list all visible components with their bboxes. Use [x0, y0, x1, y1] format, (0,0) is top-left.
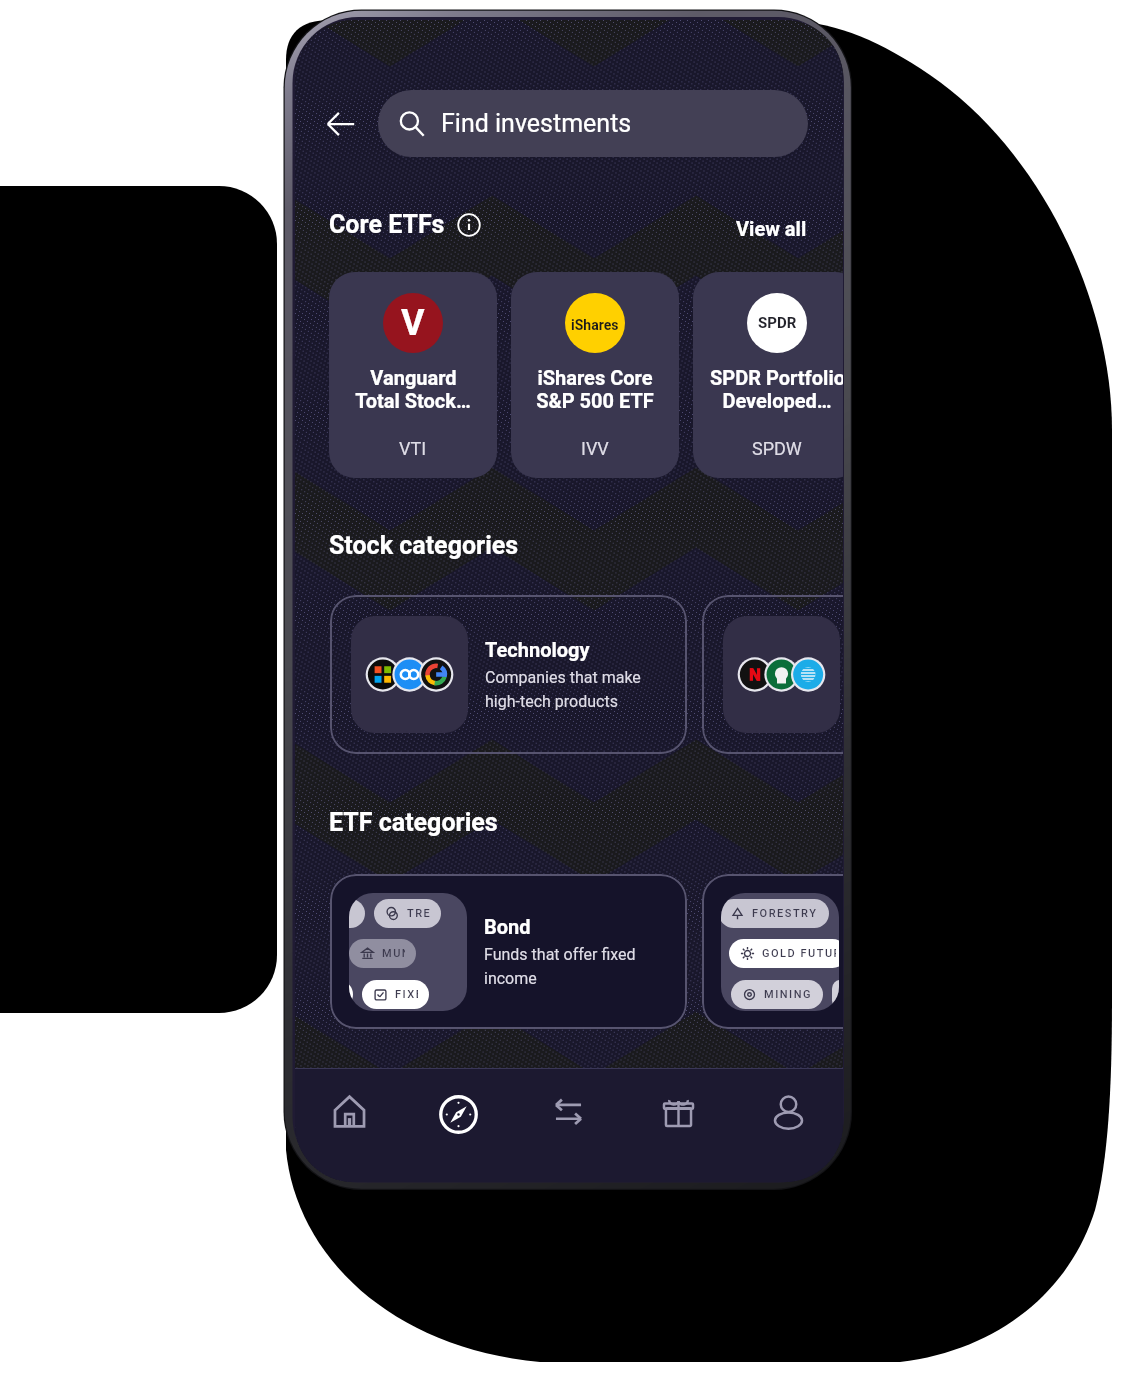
staticText: S&P 500 ETF	[536, 389, 654, 412]
staticText: MINING	[764, 988, 812, 1001]
staticText: Bond	[484, 915, 531, 938]
staticText: Core ETFs	[329, 210, 445, 239]
staticText: View all	[736, 217, 807, 240]
button[interactable]: View all	[732, 213, 811, 244]
button[interactable]: Back	[317, 100, 365, 148]
button[interactable]: Consumer	[702, 595, 843, 754]
button[interactable]: iShares	[511, 272, 679, 478]
staticText: SPDR	[758, 314, 797, 332]
button[interactable]: FORESTRY	[702, 874, 843, 1029]
staticText: FORESTRY	[752, 907, 818, 920]
staticText: Total Stock…	[355, 389, 471, 412]
button[interactable]: Information	[457, 213, 481, 237]
button[interactable]: Profile	[733, 1069, 843, 1182]
staticText: Developed…	[722, 389, 832, 412]
button[interactable]: Explore	[404, 1069, 513, 1182]
staticText: Stock categories	[329, 531, 519, 560]
staticText: Find investments	[441, 109, 632, 138]
button[interactable]: Technology	[330, 595, 687, 754]
staticText: Funds that offer fixed income	[484, 945, 636, 988]
button[interactable]: Rewards	[623, 1069, 733, 1182]
staticText: Vanguard	[370, 366, 457, 389]
staticText: MUNICIPAL BONDS	[382, 947, 405, 960]
staticText: GOLD FUTURES	[762, 947, 836, 960]
staticText: iShares Core	[537, 366, 653, 389]
staticText: Companies that make high-tech products	[485, 668, 641, 711]
staticText: IVV	[581, 438, 609, 459]
button[interactable]: TREASURY BONDS	[330, 874, 687, 1029]
button[interactable]: Home	[295, 1069, 404, 1182]
staticText: Technology	[485, 638, 590, 661]
staticText: iShares	[571, 317, 619, 333]
staticText: V	[401, 302, 425, 344]
button[interactable]: V	[329, 272, 497, 478]
button[interactable]: Find investments	[378, 90, 808, 157]
staticText: SPDR Portfolio	[710, 366, 843, 389]
staticText: ETF categories	[329, 808, 498, 837]
button[interactable]: SPDR	[693, 272, 843, 478]
staticText: VTI	[399, 438, 427, 459]
staticText: SPDW	[752, 438, 802, 459]
button[interactable]: Transfers	[513, 1069, 623, 1182]
staticText: TREASURY BONDS	[407, 907, 430, 920]
staticText: FIXED-INCOME	[395, 988, 418, 1001]
